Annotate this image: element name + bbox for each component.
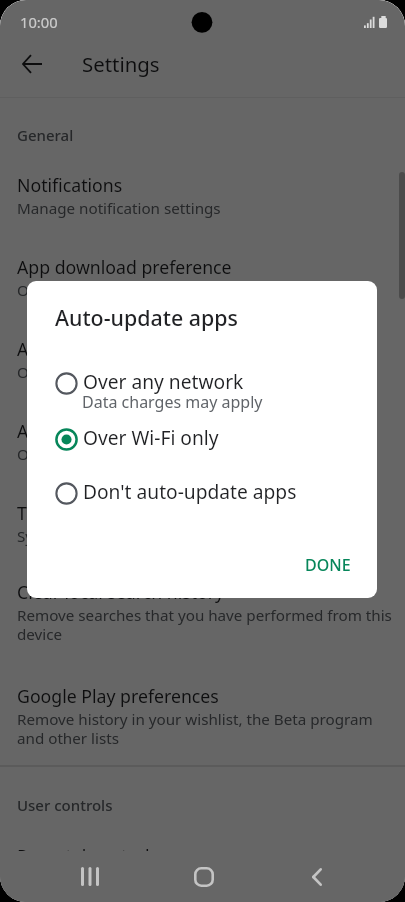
button[interactable]: Over any network — [27, 359, 377, 405]
button[interactable] — [0, 835, 405, 881]
button[interactable]: Don't auto-update apps — [27, 469, 377, 515]
button[interactable] — [0, 164, 405, 226]
staticText: Notifications — [17, 173, 123, 197]
staticText: Parental controls — [17, 844, 159, 868]
button[interactable]: Over Wi-Fi only — [27, 415, 377, 461]
button[interactable]: Home — [180, 851, 228, 902]
staticText: Theme — [17, 501, 75, 525]
button[interactable] — [0, 675, 405, 737]
button[interactable]: Recent apps — [66, 851, 114, 902]
button[interactable] — [0, 410, 405, 472]
staticText: Over Wi-Fi only — [83, 424, 219, 450]
staticText: Clear local search history — [17, 580, 225, 604]
staticText: Manage notification settings — [17, 198, 399, 219]
staticText: User controls — [17, 795, 113, 815]
staticText: 10:00 — [20, 12, 58, 32]
staticText: Auto-update apps — [55, 303, 238, 332]
staticText: Don't auto-update apps — [83, 478, 297, 504]
staticText: System default — [17, 526, 399, 547]
staticText: Over any network — [17, 444, 399, 465]
staticText: Auto-update apps — [17, 337, 166, 361]
button[interactable]: Back — [293, 851, 341, 902]
button[interactable]: Back — [10, 42, 54, 86]
staticText: Data charges may apply — [82, 391, 263, 413]
staticText: Settings — [82, 50, 160, 78]
button[interactable] — [0, 492, 405, 554]
staticText: General — [17, 125, 74, 145]
staticText: Remove searches that you have performed … — [17, 605, 399, 645]
button[interactable]: DONE — [292, 545, 364, 585]
staticText: App download preference — [17, 255, 232, 279]
staticText: Remove history in your wishlist, the Bet… — [17, 709, 399, 749]
staticText: Over Wi-Fi only — [17, 362, 399, 383]
staticText: Auto-play videos — [17, 419, 155, 443]
button[interactable] — [0, 246, 405, 308]
staticText: Over any network — [17, 280, 399, 301]
staticText: DONE — [305, 554, 351, 576]
button[interactable] — [0, 328, 405, 390]
staticText: Over any network — [83, 368, 244, 394]
button[interactable] — [0, 571, 405, 633]
staticText: Google Play preferences — [17, 684, 219, 708]
